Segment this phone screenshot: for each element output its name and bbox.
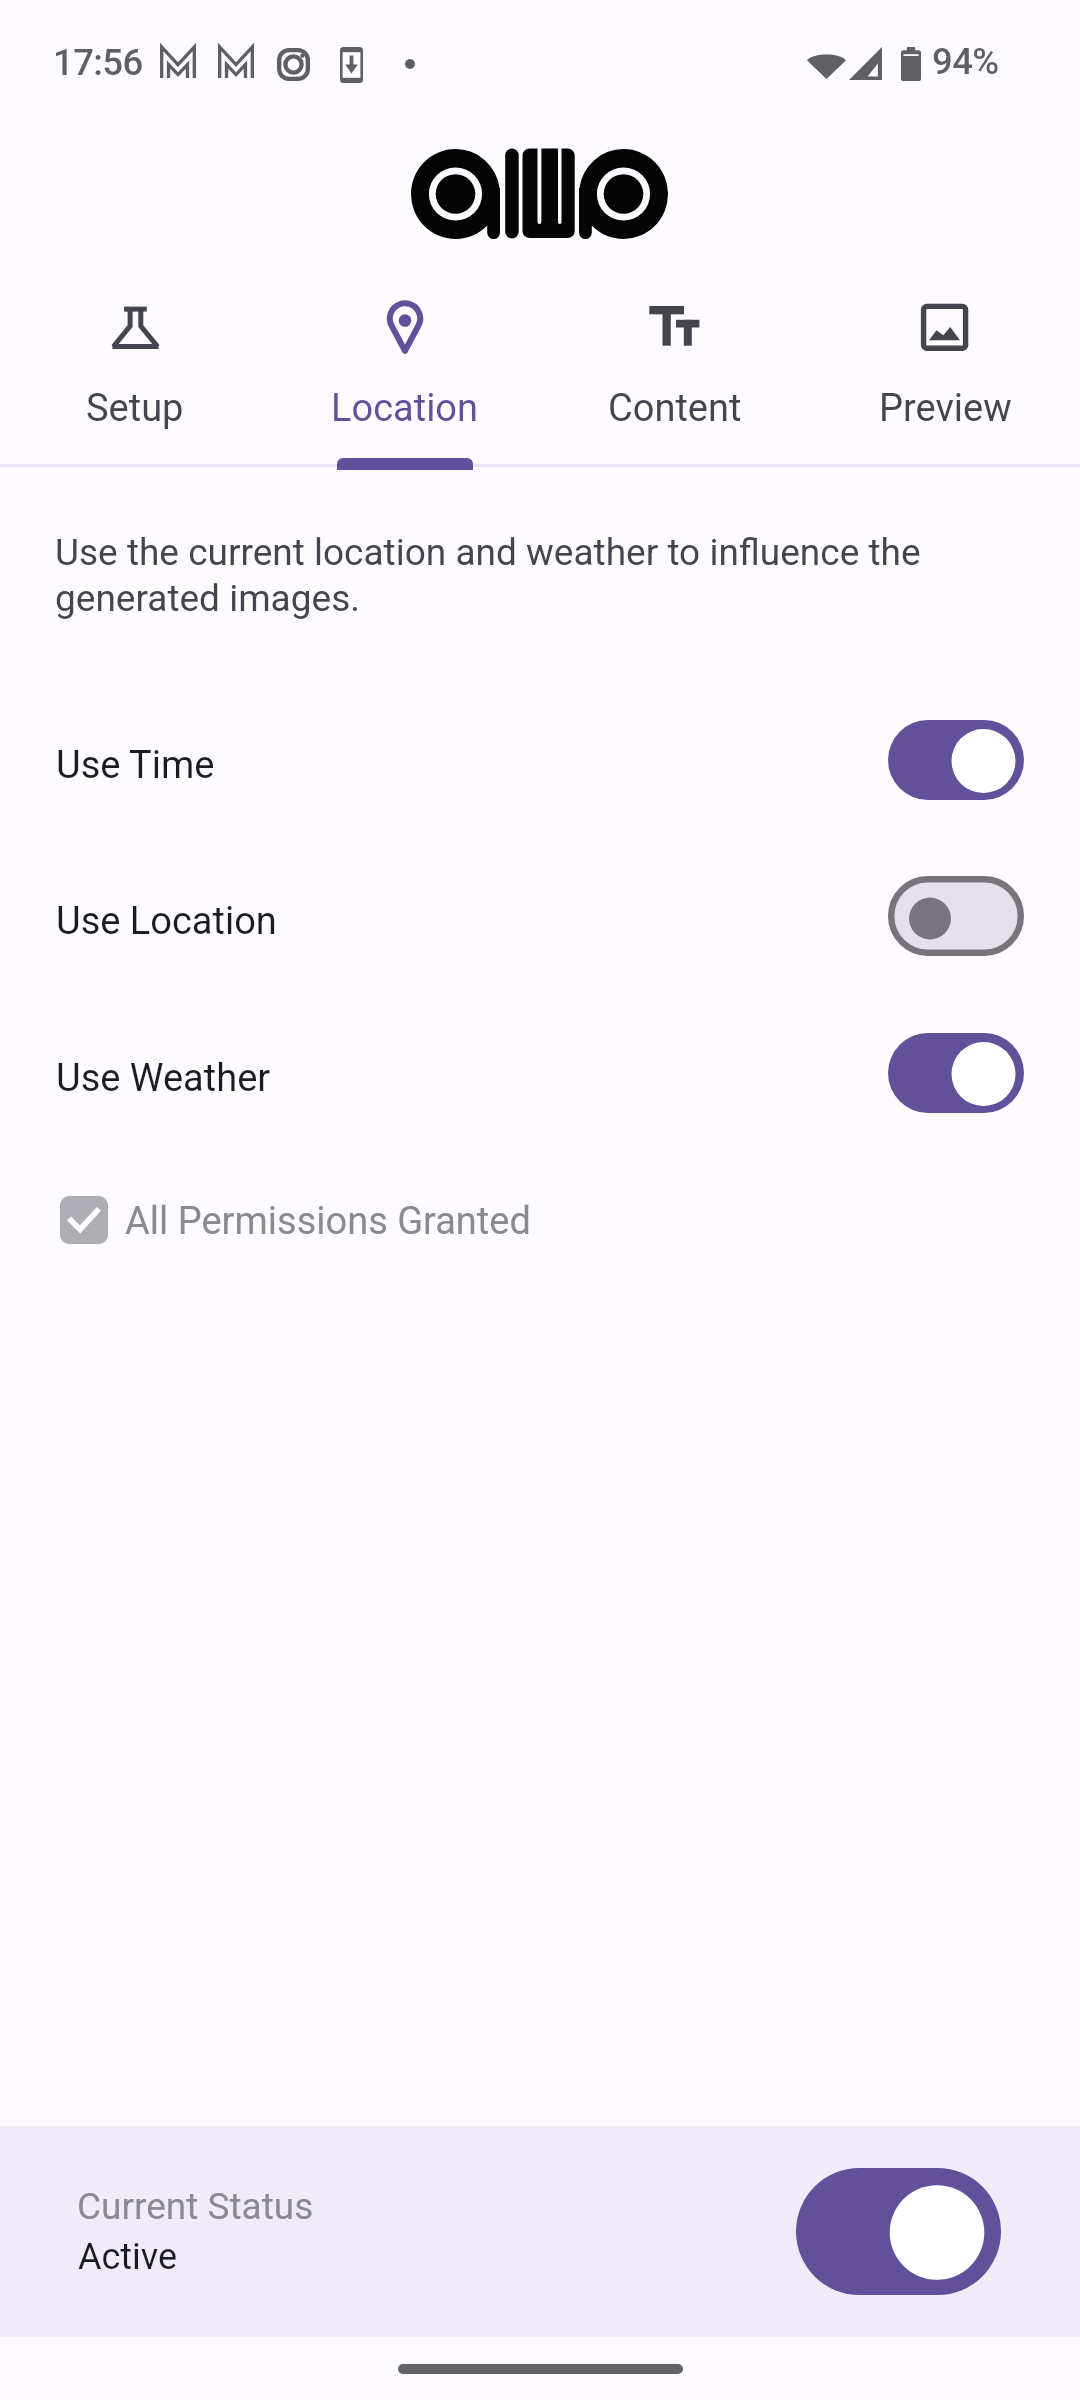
button[interactable]: Use Location [0, 849, 1080, 983]
button[interactable]: Setup [0, 270, 270, 470]
staticText: Use Time [56, 743, 215, 788]
button[interactable]: Use Weather [0, 1006, 1080, 1140]
staticText: Location [331, 386, 479, 431]
staticText: Preview [879, 386, 1012, 431]
staticText: Use Location [56, 899, 277, 944]
button[interactable]: All Permissions Granted [0, 1180, 1080, 1260]
staticText: Current Status [77, 2185, 314, 2228]
staticText: 94% [932, 40, 999, 83]
staticText: 17:56 [53, 41, 143, 84]
staticText: Content [608, 386, 742, 431]
button[interactable]: Location [270, 270, 540, 470]
staticText: Use Weather [56, 1056, 271, 1101]
button[interactable]: Toggle active status [796, 2168, 1001, 2295]
staticText: Active [78, 2236, 178, 2278]
staticText: All Permissions Granted [125, 1199, 531, 1244]
staticText: Setup [86, 386, 184, 431]
button[interactable]: Use Time [0, 693, 1080, 827]
button[interactable]: Content [540, 270, 810, 470]
button[interactable]: Preview [810, 270, 1080, 470]
staticText: Use the current location and weather to … [55, 531, 921, 620]
